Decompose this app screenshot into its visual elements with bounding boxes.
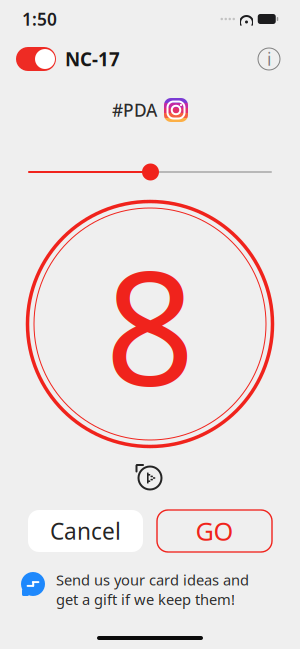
button[interactable]: Information [254, 44, 284, 74]
button[interactable]: NC-17 [16, 47, 120, 71]
button[interactable]: #PDA [112, 98, 188, 122]
staticText: Send us your card ideas and get a gift i… [56, 570, 249, 609]
button[interactable]: GO [157, 510, 272, 552]
staticText: i [267, 47, 271, 70]
button[interactable]: Send us your card ideas and get a gift i… [0, 570, 300, 609]
button[interactable]: Cancel [28, 510, 143, 552]
staticText: 8 [105, 219, 195, 428]
staticText: Cancel [50, 516, 121, 546]
staticText: GO [195, 514, 233, 548]
button[interactable]: Restart [130, 460, 170, 496]
staticText: NC-17 [65, 47, 120, 71]
staticText: #PDA [112, 98, 157, 121]
staticText: 1:50 [22, 7, 57, 30]
